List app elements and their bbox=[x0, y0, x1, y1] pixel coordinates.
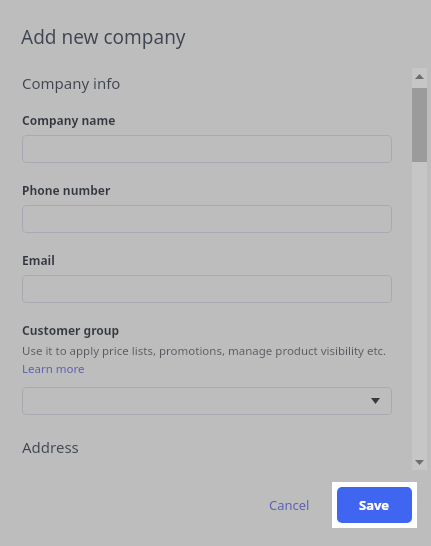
staticText: Address bbox=[22, 437, 79, 457]
button[interactable]: Learn more bbox=[22, 361, 85, 377]
button[interactable]: Scroll down bbox=[412, 454, 427, 470]
button[interactable]: Company name bbox=[22, 135, 392, 163]
staticText: Email bbox=[22, 252, 55, 268]
button[interactable]: Customer group bbox=[22, 387, 392, 415]
staticText: Phone number bbox=[22, 182, 111, 198]
button[interactable]: Email bbox=[22, 275, 392, 303]
staticText: Use it to apply price lists, promotions,… bbox=[22, 343, 387, 359]
staticText: Cancel bbox=[269, 496, 310, 514]
staticText: Company info bbox=[22, 73, 121, 93]
staticText: Learn more bbox=[22, 361, 85, 377]
staticText: Customer group bbox=[22, 322, 120, 338]
staticText: Save bbox=[359, 496, 390, 514]
staticText: Add new company bbox=[21, 24, 186, 50]
button[interactable]: Phone number bbox=[22, 205, 392, 233]
button[interactable]: Scroll up bbox=[412, 68, 427, 84]
button[interactable]: Save bbox=[337, 487, 412, 523]
staticText: Company name bbox=[22, 112, 116, 128]
button[interactable]: Cancel bbox=[259, 490, 320, 520]
